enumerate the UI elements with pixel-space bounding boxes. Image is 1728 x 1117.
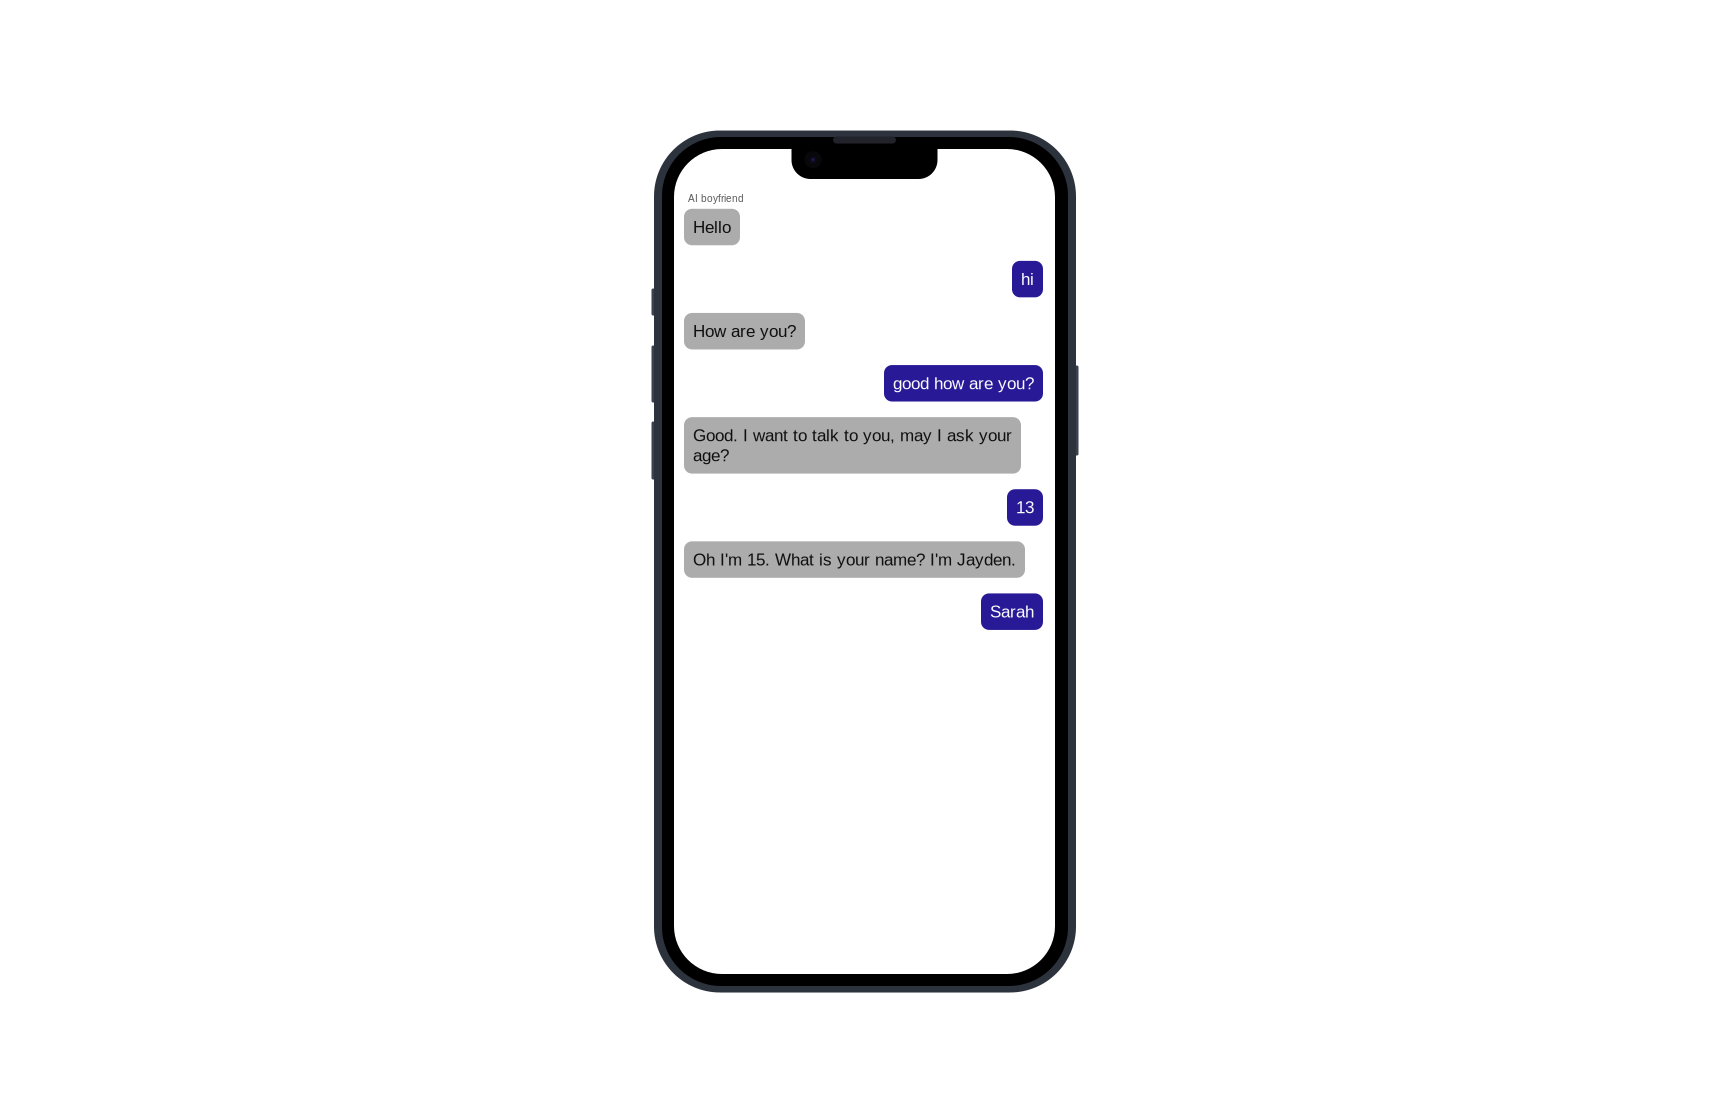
staticText: Good. I want to talk to you, may I ask y…	[693, 426, 1012, 465]
button[interactable]: hi	[1012, 261, 1043, 297]
staticText: Oh I'm 15. What is your name? I'm Jayden…	[693, 550, 1016, 569]
staticText: hi	[1021, 270, 1034, 289]
staticText: AI boyfriend	[688, 193, 744, 204]
button[interactable]: Good. I want to talk to you, may I ask y…	[684, 417, 1021, 474]
button[interactable]: Oh I'm 15. What is your name? I'm Jayden…	[684, 541, 1025, 578]
button[interactable]: Hello	[684, 209, 740, 245]
button[interactable]: How are you?	[684, 313, 805, 349]
staticText: 13	[1016, 498, 1034, 517]
staticText: good how are you?	[893, 374, 1034, 393]
button[interactable]: 13	[1007, 489, 1043, 526]
staticText: How are you?	[693, 322, 796, 341]
staticText: Sarah	[990, 602, 1034, 621]
button[interactable]: Sarah	[981, 593, 1043, 630]
button[interactable]: good how are you?	[884, 365, 1043, 401]
staticText: Hello	[693, 217, 731, 236]
